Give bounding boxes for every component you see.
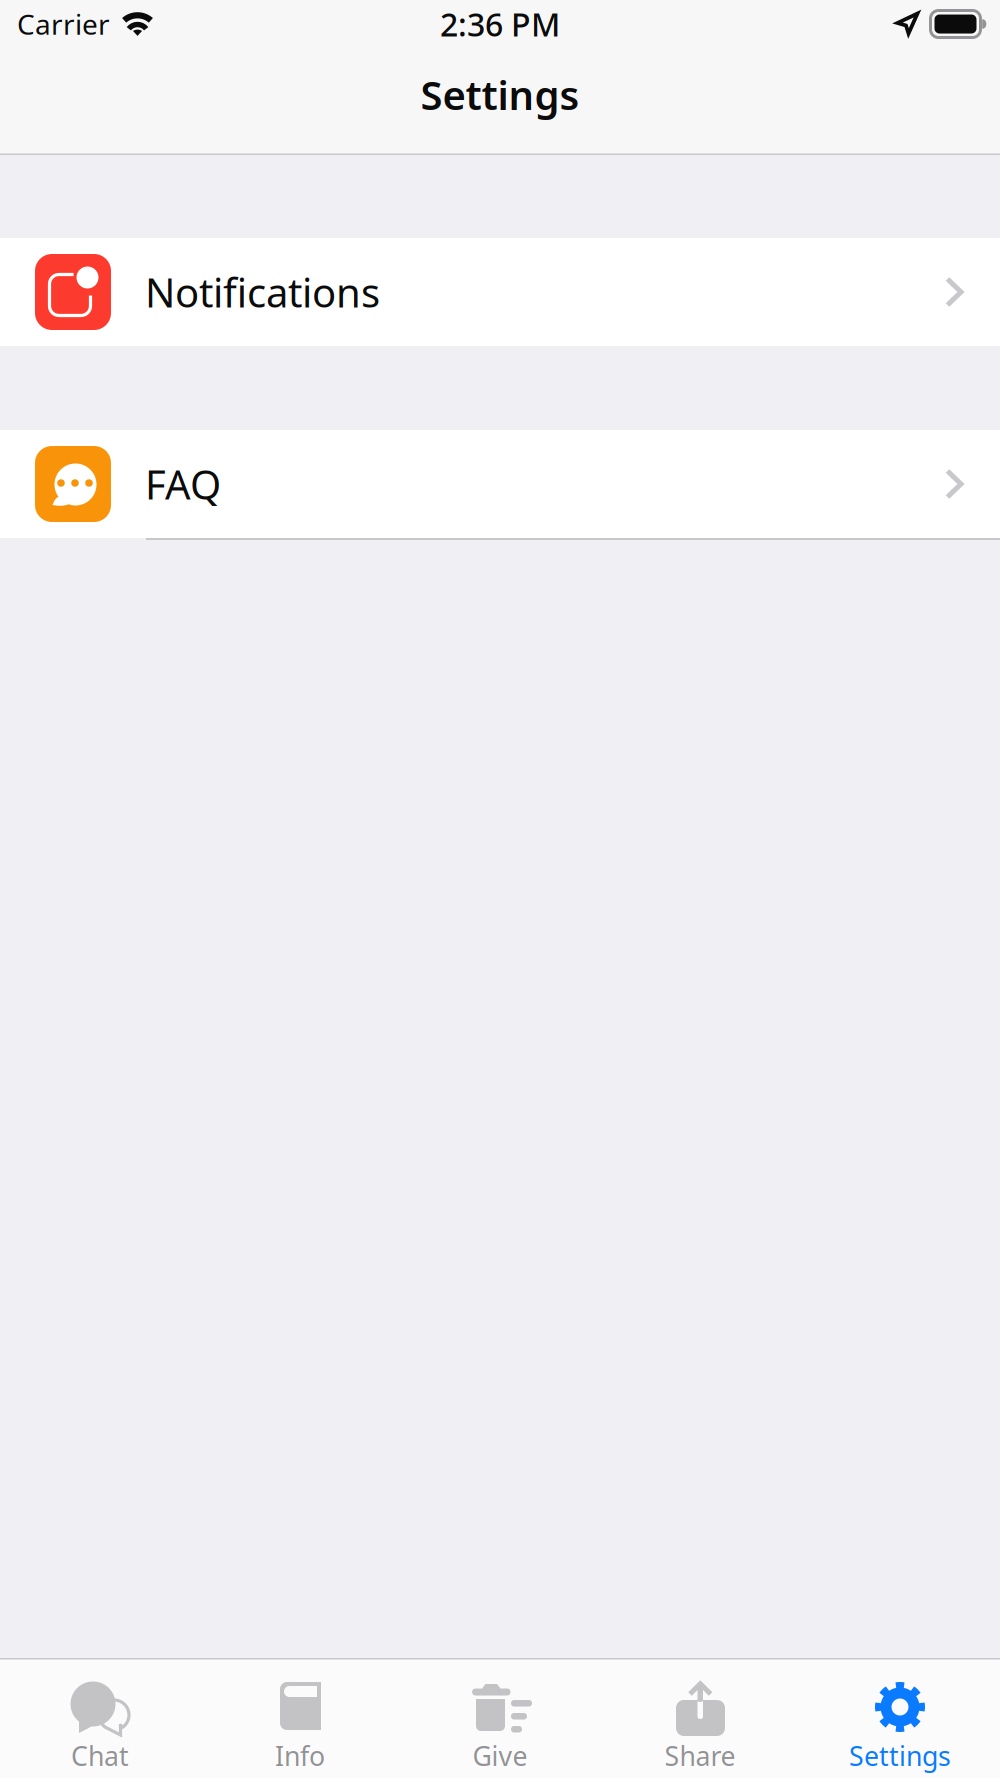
staticText: 2:36 PM [440,3,560,45]
button[interactable]: Give [400,1658,600,1778]
button[interactable]: Notifications [0,238,1000,346]
staticText: Info [275,1738,325,1773]
button[interactable]: Settings [800,1658,1000,1778]
staticText: Give [472,1738,527,1773]
button[interactable]: Chat [0,1658,200,1778]
staticText: Settings [849,1738,951,1773]
staticText: Share [664,1738,735,1773]
staticText: Chat [71,1738,129,1773]
staticText: Carrier [17,5,110,43]
button[interactable]: Info [200,1658,400,1778]
staticText: Settings [420,68,579,121]
staticText: FAQ [145,457,221,510]
button[interactable]: Share [600,1658,800,1778]
staticText: Notifications [145,265,380,318]
button[interactable]: FAQ [0,430,1000,538]
